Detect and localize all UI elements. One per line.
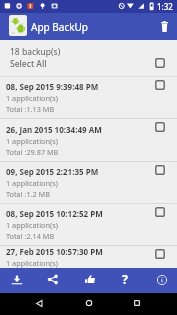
staticText: App BackUp [31, 20, 88, 34]
button[interactable]: 26, Jan 2015 10:34:49 AM [0, 119, 177, 162]
button[interactable]: 09, Sep 2015 2:21:35 PM [0, 162, 177, 204]
staticText: Total :1.2 MB [6, 189, 50, 199]
button[interactable]: Share [35, 267, 70, 292]
staticText: Select All [10, 58, 47, 70]
staticText: 1 application(s) [6, 136, 58, 146]
button[interactable]: About [144, 267, 177, 292]
staticText: 1:32 [157, 1, 173, 12]
button[interactable]: Recents [126, 292, 148, 314]
button[interactable]: Home [78, 292, 100, 314]
staticText: 1 application(s) [6, 93, 58, 103]
staticText: 18 backup(s) [10, 46, 61, 58]
button[interactable]: Delete [153, 15, 176, 38]
staticText: 1 application(s) [6, 178, 58, 188]
staticText: 1 application(s) [6, 220, 58, 230]
staticText: 26, Jan 2015 10:34:49 AM [6, 124, 102, 135]
button[interactable]: App icon [9, 15, 27, 36]
button[interactable]: Rate [72, 267, 107, 292]
staticText: 08, Sep 2015 9:39:48 PM [6, 81, 99, 92]
button[interactable]: 08, Sep 2015 9:39:48 PM [0, 77, 177, 119]
button[interactable]: 08, Sep 2015 10:12:52 PM [0, 204, 177, 246]
staticText: 27, Feb 2015 10:57:30 PM [6, 246, 103, 257]
staticText: 1 application(s) [6, 258, 58, 268]
button[interactable]: Select all checkbox [143, 58, 177, 76]
button[interactable]: Help [107, 267, 142, 292]
staticText: Total :2.14 MB [6, 231, 55, 241]
staticText: 09, Sep 2015 2:21:35 PM [6, 166, 99, 177]
staticText: Total :1.13 MB [6, 104, 55, 114]
button[interactable]: Restore [0, 267, 34, 292]
staticText: ? [122, 271, 128, 288]
staticText: Total :29.87 MB [6, 147, 59, 157]
button[interactable]: 27, Feb 2015 10:57:30 PM [0, 246, 177, 268]
button[interactable]: Back [28, 292, 50, 314]
staticText: 08, Sep 2015 10:12:52 PM [6, 208, 103, 219]
